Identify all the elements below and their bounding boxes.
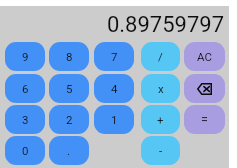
staticText: x bbox=[158, 82, 164, 95]
staticText: / bbox=[158, 50, 163, 63]
button[interactable]: / bbox=[141, 42, 180, 71]
button[interactable]: 9 bbox=[5, 42, 45, 71]
button[interactable]: - bbox=[141, 136, 180, 165]
button[interactable]: Backspace bbox=[184, 74, 225, 103]
staticText: 7 bbox=[111, 50, 118, 63]
button[interactable]: = bbox=[184, 105, 225, 134]
staticText: AC bbox=[197, 50, 212, 63]
staticText: 4 bbox=[111, 82, 118, 95]
button[interactable]: . bbox=[49, 136, 89, 165]
staticText: 8 bbox=[66, 50, 73, 63]
staticText: 6 bbox=[22, 82, 29, 95]
button[interactable]: 7 bbox=[94, 42, 134, 71]
staticText: 1 bbox=[111, 113, 118, 126]
staticText: - bbox=[159, 144, 163, 157]
staticText: 3 bbox=[22, 113, 29, 126]
button[interactable]: 5 bbox=[49, 74, 89, 103]
button[interactable]: 8 bbox=[49, 42, 89, 71]
button[interactable]: AC bbox=[184, 42, 225, 71]
staticText: 0 bbox=[22, 144, 29, 157]
button[interactable]: 1 bbox=[94, 105, 134, 134]
button[interactable]: + bbox=[141, 105, 180, 134]
staticText: 2 bbox=[66, 113, 73, 126]
staticText: . bbox=[67, 144, 71, 157]
button[interactable]: 4 bbox=[94, 74, 134, 103]
staticText: 9 bbox=[22, 50, 29, 63]
button[interactable]: 2 bbox=[49, 105, 89, 134]
button[interactable]: 0 bbox=[5, 136, 45, 165]
staticText: + bbox=[157, 113, 164, 126]
button[interactable]: 3 bbox=[5, 105, 45, 134]
button[interactable]: 6 bbox=[5, 74, 45, 103]
staticText: 0.89759797 bbox=[106, 12, 224, 36]
staticText: = bbox=[201, 112, 208, 127]
button[interactable]: x bbox=[141, 74, 180, 103]
staticText: 5 bbox=[66, 82, 73, 95]
